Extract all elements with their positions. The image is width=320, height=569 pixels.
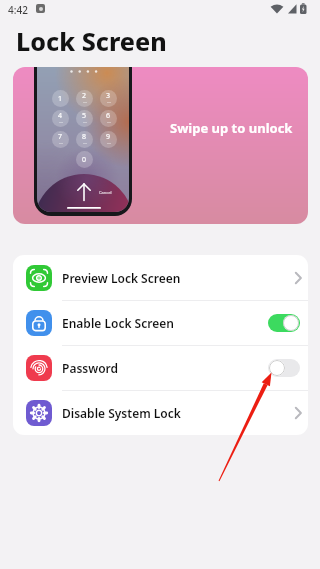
staticText: 1 [58,94,63,104]
staticText: 2 [82,91,87,101]
staticText: 4 [58,111,63,121]
staticText: Enable Lock Screen [62,315,174,331]
staticText: 9 [106,132,111,142]
button[interactable]: Enable Lock Screen [13,300,308,345]
staticText: 4:42 [8,3,28,17]
button[interactable]: Preview Lock Screen [13,255,308,300]
button[interactable]: 1 [13,67,308,224]
button[interactable]: Disable System Lock [13,390,308,435]
staticText: Password [62,360,119,376]
button[interactable] [268,314,300,332]
button[interactable]: Password [13,345,308,390]
staticText: Cancel [99,190,112,195]
staticText: Lock Screen [16,24,167,58]
staticText: 5 [82,111,87,121]
staticText: 0 [82,155,87,165]
staticText: Disable System Lock [62,405,181,421]
staticText: Preview Lock Screen [62,270,181,286]
button[interactable] [268,359,300,377]
staticText: Swipe up to unlock [170,119,293,137]
staticText: 8 [82,132,87,142]
staticText: 6 [106,111,111,121]
staticText: 7 [58,132,63,142]
staticText: 3 [106,91,111,101]
